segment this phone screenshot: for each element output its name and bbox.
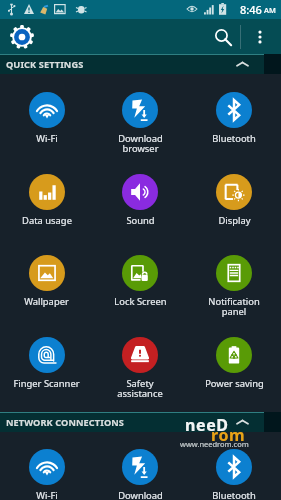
staticText: Lock Screen [114,295,167,308]
staticText: Display [218,214,251,227]
button[interactable]: Wi-Fi [0,449,93,500]
button[interactable]: Bluetooth [187,92,281,145]
button[interactable]: Search [207,21,239,53]
button[interactable]: Sound [93,174,187,227]
staticText: AM [264,5,276,15]
button[interactable]: Finger Scanner [0,337,93,390]
button[interactable]: Settings [5,20,38,53]
button[interactable]: Wallpaper [0,255,93,308]
button[interactable]: Data usage [0,174,93,227]
button[interactable]: Download browser [93,92,187,155]
staticText: Finger Scanner [13,377,80,390]
staticText: rom [211,424,246,446]
staticText: www.needrom.com [180,439,249,449]
staticText: Download browser [118,132,163,155]
button[interactable]: Lock Screen [93,255,187,308]
staticText: Bluetooth [212,132,256,145]
button[interactable]: Display [187,174,281,227]
button[interactable]: NETWORK CONNECTIONS [0,413,264,432]
staticText: Bluetooth [212,489,256,500]
button[interactable]: More options [244,21,276,53]
staticText: Sound [126,214,155,227]
button[interactable]: Power saving [187,337,281,390]
staticText: NETWORK CONNECTIONS [6,416,125,429]
staticText: Safety assistance [117,377,163,400]
button[interactable]: Notification panel [187,255,281,318]
staticText: Notification panel [208,295,260,318]
staticText: 8:46 [240,2,262,17]
staticText: neeD [185,414,229,436]
button[interactable]: Wi-Fi [0,92,93,145]
staticText: Power saving [205,377,264,390]
staticText: Wi-Fi [36,132,58,145]
staticText: Data usage [22,214,72,227]
staticText: QUICK SETTINGS [6,58,84,71]
button[interactable]: QUICK SETTINGS [0,55,264,74]
button[interactable]: Bluetooth [187,449,281,500]
staticText: Wallpaper [24,295,69,308]
staticText: Download [118,489,163,500]
button[interactable]: Safety assistance [93,337,187,400]
staticText: Wi-Fi [36,489,58,500]
button[interactable]: Download [93,449,187,500]
